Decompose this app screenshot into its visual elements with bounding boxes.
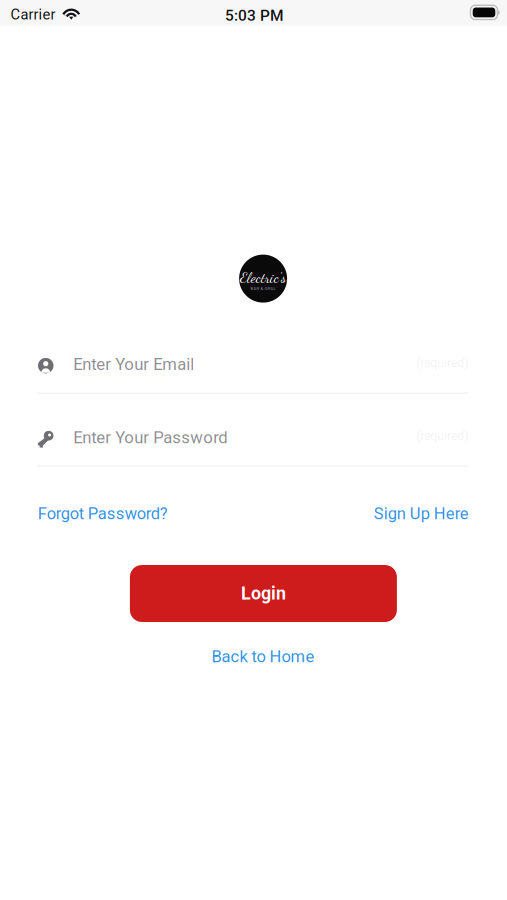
staticText: Carrier xyxy=(10,6,55,23)
staticText: Enter Your Password xyxy=(73,428,227,447)
staticText: Forgot Password? xyxy=(38,504,168,523)
staticText: Sign Up Here xyxy=(374,504,469,523)
staticText: Back to Home xyxy=(211,647,314,666)
staticText: BAR & GRILL xyxy=(251,286,276,291)
staticText: (required) xyxy=(416,429,468,443)
staticText: Electric's xyxy=(240,268,286,286)
staticText: Enter Your Email xyxy=(73,355,194,374)
button[interactable]: Login xyxy=(130,565,397,622)
button[interactable]: Forgot Password? xyxy=(38,504,168,523)
staticText: (required) xyxy=(416,356,468,370)
staticText: 5:03 PM xyxy=(225,6,284,24)
button[interactable]: Sign Up Here xyxy=(374,504,469,523)
staticText: Login xyxy=(241,583,286,604)
button[interactable]: Back to Home xyxy=(211,647,314,666)
